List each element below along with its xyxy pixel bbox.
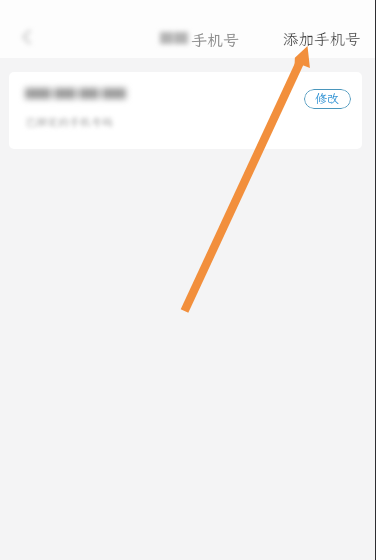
staticText: 手机号: [191, 29, 240, 50]
button[interactable]: 添加手机号: [273, 19, 371, 59]
button[interactable]: Back: [5, 15, 49, 59]
button[interactable]: 已绑定的手机号码: [9, 72, 362, 149]
staticText: 已绑定的手机号码: [25, 115, 113, 129]
button[interactable]: 修改: [304, 89, 351, 109]
staticText: 修改: [315, 91, 340, 107]
staticText: 添加手机号: [283, 29, 361, 49]
